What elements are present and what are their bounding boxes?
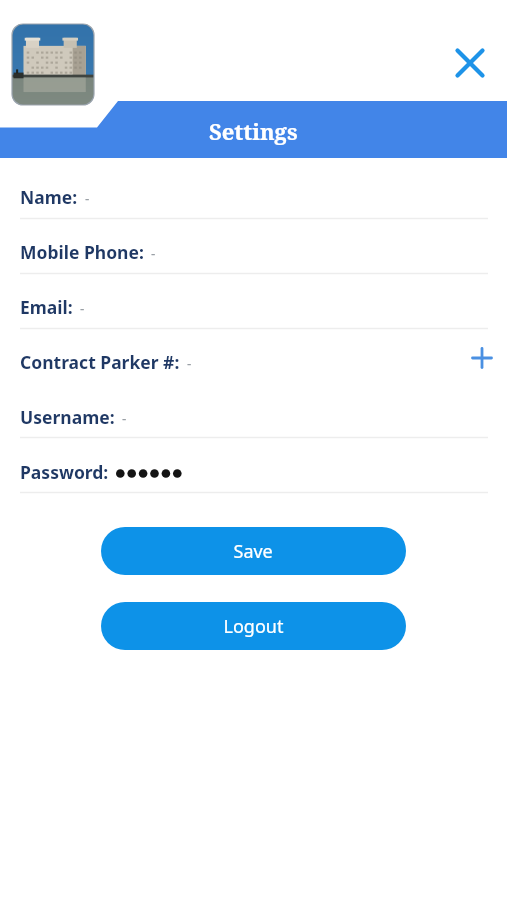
button[interactable]: Add contract parker number xyxy=(460,336,504,380)
button[interactable] xyxy=(20,398,488,434)
button[interactable]: Close xyxy=(446,39,494,87)
button[interactable] xyxy=(101,527,406,575)
button[interactable]: App logo xyxy=(12,24,94,105)
button[interactable] xyxy=(20,233,488,269)
button[interactable] xyxy=(20,343,488,379)
button[interactable] xyxy=(20,288,488,324)
button[interactable] xyxy=(101,602,406,650)
button[interactable] xyxy=(20,178,488,214)
button[interactable] xyxy=(20,453,488,489)
